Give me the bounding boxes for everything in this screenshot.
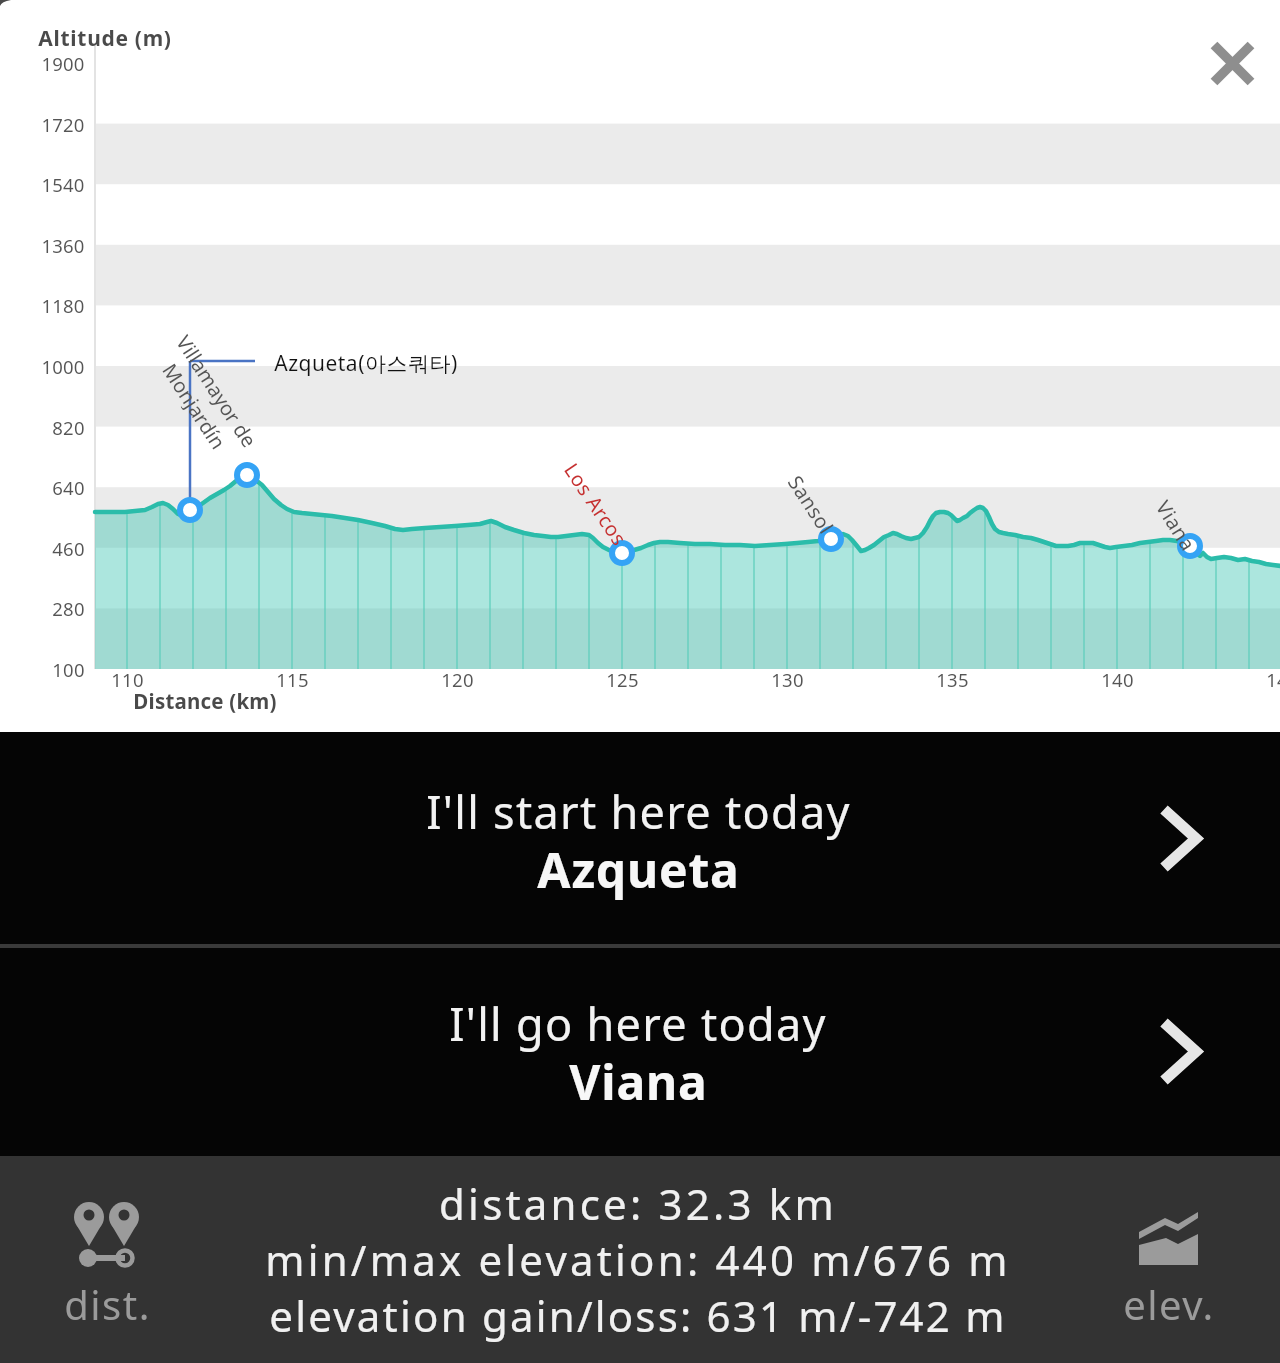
staticText: Viana [1150,495,1202,556]
staticText: 1360 [41,233,85,258]
staticText: 1540 [41,172,85,197]
staticText: elev. [1123,1277,1215,1331]
staticText: distance: 32.3 km [439,1175,837,1232]
staticText: 140 [1101,667,1134,692]
staticText: 145 [1266,667,1280,692]
staticText: 1900 [41,51,85,76]
button[interactable] [30,1180,190,1340]
staticText: Sansol [782,470,840,539]
staticText: Azqueta(아스쿼타) [274,349,458,378]
staticText: Viana [569,1049,708,1114]
staticText: 280 [52,596,85,621]
staticText: 125 [606,667,639,692]
button[interactable]: I'll start here today [0,732,1280,944]
button[interactable] [1195,26,1271,102]
staticText: 640 [52,475,85,500]
staticText: I'll start here today [426,781,851,842]
staticText: elevation gain/loss: 631 m/-742 m [269,1287,1007,1344]
staticText: 135 [936,667,969,692]
staticText: 1000 [41,354,85,379]
staticText: Altitude (m) [38,24,172,50]
button[interactable] [1090,1180,1250,1340]
staticText: Villamayor de [170,330,263,452]
staticText: 110 [111,667,144,692]
staticText: min/max elevation: 440 m/676 m [265,1231,1011,1288]
staticText: Azqueta [537,837,740,902]
staticText: 130 [771,667,804,692]
staticText: 115 [276,667,309,692]
staticText: 100 [52,657,85,682]
staticText: I'll go here today [449,993,827,1054]
staticText: 120 [441,667,474,692]
staticText: 1720 [41,112,85,137]
staticText: Distance (km) [133,687,277,715]
staticText: 460 [52,536,85,561]
staticText: Los Arcos [558,458,633,551]
staticText: dist. [64,1277,151,1331]
staticText: Monjardín [158,358,232,453]
staticText: 1180 [41,293,85,318]
staticText: 820 [52,415,85,440]
button[interactable]: I'll go here today [0,948,1280,1156]
